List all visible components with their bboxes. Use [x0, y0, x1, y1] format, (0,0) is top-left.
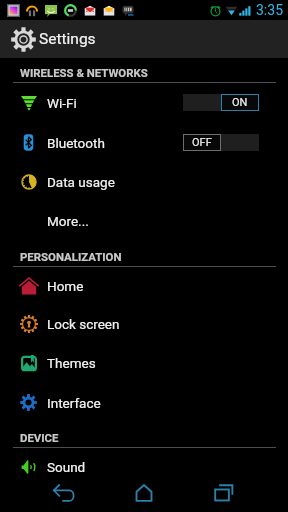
staticText: ON [232, 96, 248, 109]
staticText: Data usage [47, 174, 115, 190]
staticText: Settings [39, 30, 96, 48]
staticText: Bluetooth [47, 135, 105, 151]
button[interactable]: OFF [183, 134, 259, 151]
staticText: 3:35 [256, 2, 283, 18]
button[interactable]: Themes [0, 343, 288, 382]
staticText: WIRELESS & NETWORKS [20, 66, 148, 79]
button[interactable]: Settings [0, 20, 288, 58]
button[interactable]: Interface [0, 383, 288, 422]
button[interactable]: ON [183, 94, 259, 111]
button[interactable]: Data usage [0, 162, 288, 201]
staticText: Home [47, 278, 84, 294]
button[interactable]: More... [0, 201, 288, 240]
button[interactable]: Sound [0, 447, 288, 486]
button[interactable]: Back [40, 474, 88, 512]
staticText: Wi-Fi [47, 95, 77, 111]
button[interactable]: Bluetooth [0, 123, 288, 162]
staticText: PERSONALIZATION [20, 250, 122, 263]
staticText: Themes [47, 355, 96, 371]
staticText: More... [47, 213, 89, 229]
button[interactable]: Home [120, 474, 168, 512]
staticText: Interface [47, 395, 101, 411]
staticText: Lock screen [47, 316, 120, 332]
staticText: Sound [47, 459, 86, 475]
button[interactable]: Recent apps [200, 474, 248, 512]
button[interactable]: Home [0, 266, 288, 305]
staticText: OFF [192, 136, 212, 149]
button[interactable]: Wi-Fi [0, 83, 288, 122]
staticText: DEVICE [20, 431, 59, 444]
button[interactable]: Lock screen [0, 304, 288, 343]
